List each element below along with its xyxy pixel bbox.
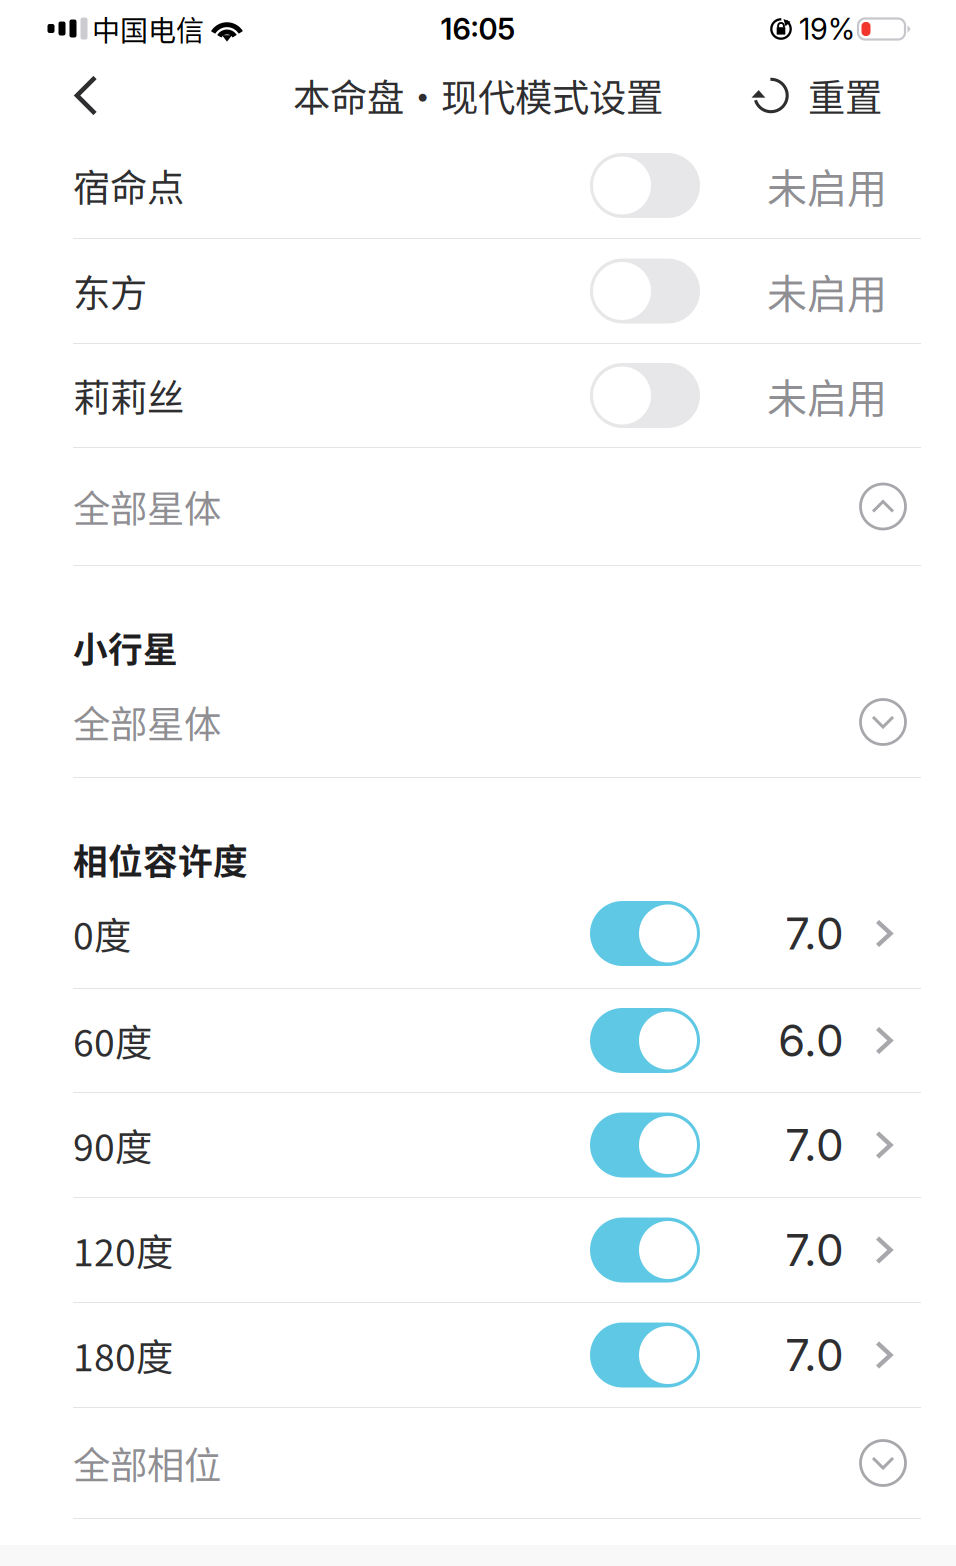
staticText: 宿命点: [73, 158, 184, 213]
staticText: 7.0: [785, 907, 844, 960]
staticText: 0度: [73, 906, 131, 961]
staticText: 60度: [73, 1013, 152, 1068]
button[interactable]: 180度: [0, 1303, 956, 1407]
button[interactable]: 全部相位: [0, 1408, 956, 1518]
button[interactable]: 返回: [0, 58, 98, 133]
staticText: 重置: [808, 68, 882, 123]
button[interactable]: 0度: [0, 879, 956, 988]
staticText: 7.0: [785, 1328, 844, 1382]
staticText: 16:05: [440, 11, 515, 47]
staticText: 7.0: [785, 1118, 844, 1172]
staticText: 7.0: [785, 1223, 844, 1277]
staticText: 未启用: [767, 156, 887, 214]
button[interactable]: 东方: [0, 239, 956, 343]
staticText: 180度: [73, 1328, 173, 1382]
staticText: 全部相位: [73, 1436, 221, 1490]
staticText: 全部星体: [73, 479, 221, 534]
staticText: 莉莉丝: [73, 368, 184, 423]
staticText: 全部星体: [73, 695, 221, 749]
staticText: 相位容许度: [73, 834, 248, 885]
button[interactable]: 90度: [0, 1093, 956, 1197]
staticText: 120度: [73, 1223, 173, 1277]
staticText: 未启用: [767, 262, 887, 320]
button[interactable]: 全部星体: [0, 448, 956, 565]
button[interactable]: 莉莉丝: [0, 344, 956, 447]
button[interactable]: 全部星体: [0, 667, 956, 777]
button[interactable]: 宿命点: [0, 133, 956, 238]
staticText: 19%: [799, 11, 855, 47]
button[interactable]: 60度: [0, 989, 956, 1092]
staticText: 中国电信: [86, 9, 210, 49]
button[interactable]: 重置: [751, 58, 956, 133]
staticText: 本命盘·现代模式设置: [293, 68, 663, 123]
staticText: 6.0: [778, 1014, 844, 1067]
staticText: 小行星: [73, 622, 178, 673]
staticText: 未启用: [767, 366, 887, 424]
staticText: 东方: [73, 264, 147, 318]
button[interactable]: 120度: [0, 1198, 956, 1302]
staticText: 90度: [73, 1118, 152, 1172]
